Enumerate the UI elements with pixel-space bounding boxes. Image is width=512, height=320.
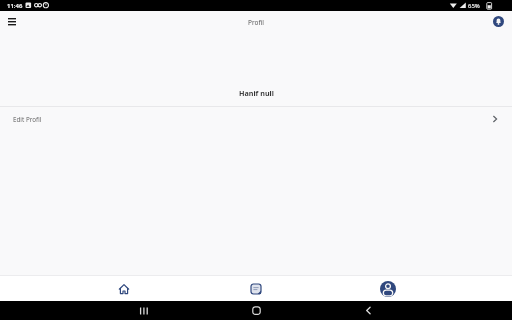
staticText: Profil [248, 18, 265, 27]
staticText: Edit Profil [13, 115, 42, 124]
button[interactable] [122, 301, 166, 320]
button[interactable]: Edit Profil [0, 107, 512, 131]
button[interactable] [234, 301, 278, 320]
button[interactable] [488, 11, 509, 32]
button[interactable] [346, 301, 390, 320]
staticText: 11:46 [7, 2, 23, 10]
button[interactable] [96, 276, 152, 301]
staticText: 65% [468, 2, 480, 10]
button[interactable] [2, 13, 22, 33]
button[interactable] [360, 276, 416, 301]
staticText: Hanif null [239, 88, 274, 98]
button[interactable] [228, 276, 284, 301]
